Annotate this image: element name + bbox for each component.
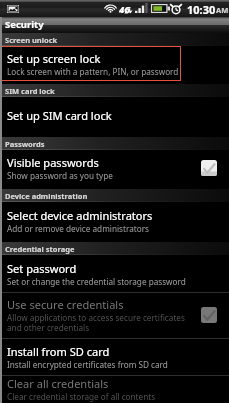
staticText: Device administration xyxy=(5,191,88,201)
other: Checkbox Visible passwords xyxy=(201,160,217,176)
staticText: Install from SD card xyxy=(7,344,110,359)
button[interactable]: Install from SD card xyxy=(0,338,229,375)
staticText: 10:30 xyxy=(187,2,216,17)
staticText: Lock screen with a pattern, PIN, or pass… xyxy=(7,66,179,77)
staticText: Allow applications to access secure cert… xyxy=(7,312,185,323)
other: Alarm set xyxy=(170,3,182,14)
staticText: Security xyxy=(5,18,44,31)
button[interactable]: Set up SIM card lock xyxy=(0,97,229,134)
staticText: AM xyxy=(216,5,229,15)
other: Screenshot captured xyxy=(7,5,19,13)
staticText: 4G xyxy=(119,3,131,15)
button[interactable]: Use secure credentials xyxy=(0,292,229,338)
staticText: Clear all credentials xyxy=(7,376,109,391)
other: 4G data xyxy=(124,10,133,15)
staticText: Select device administrators xyxy=(7,208,153,223)
staticText: Set up SIM card lock xyxy=(7,108,112,123)
staticText: Add or remove device administrators xyxy=(7,223,149,234)
other: Signal strength xyxy=(135,3,149,13)
staticText: and other credentials xyxy=(7,322,90,333)
staticText: Set up screen lock xyxy=(7,51,101,66)
staticText: Show password as you type xyxy=(7,170,113,181)
staticText: Passwords xyxy=(5,139,45,149)
staticText: Visible passwords xyxy=(7,155,99,170)
staticText: SIM card lock xyxy=(5,86,55,96)
staticText: Screen unlock xyxy=(5,35,58,45)
button[interactable]: Visible passwords xyxy=(0,150,229,186)
button[interactable]: Select device administrators xyxy=(0,202,229,239)
button[interactable]: Set up screen lock xyxy=(0,46,229,81)
staticText: Set password xyxy=(7,261,77,276)
other: Wi-Fi xyxy=(103,2,118,13)
other: Checkbox Use secure credentials xyxy=(201,307,217,323)
button[interactable]: Set password xyxy=(0,255,229,292)
staticText: Install encrypted certificates from SD c… xyxy=(7,359,168,370)
staticText: Clear credential storage of all contents xyxy=(7,391,156,402)
staticText: Credential storage xyxy=(5,244,75,254)
other: Battery xyxy=(151,4,170,13)
staticText: Use secure credentials xyxy=(7,297,124,312)
staticText: Set or change the credential storage pas… xyxy=(7,276,186,287)
button[interactable]: Clear all credentials xyxy=(0,375,229,403)
